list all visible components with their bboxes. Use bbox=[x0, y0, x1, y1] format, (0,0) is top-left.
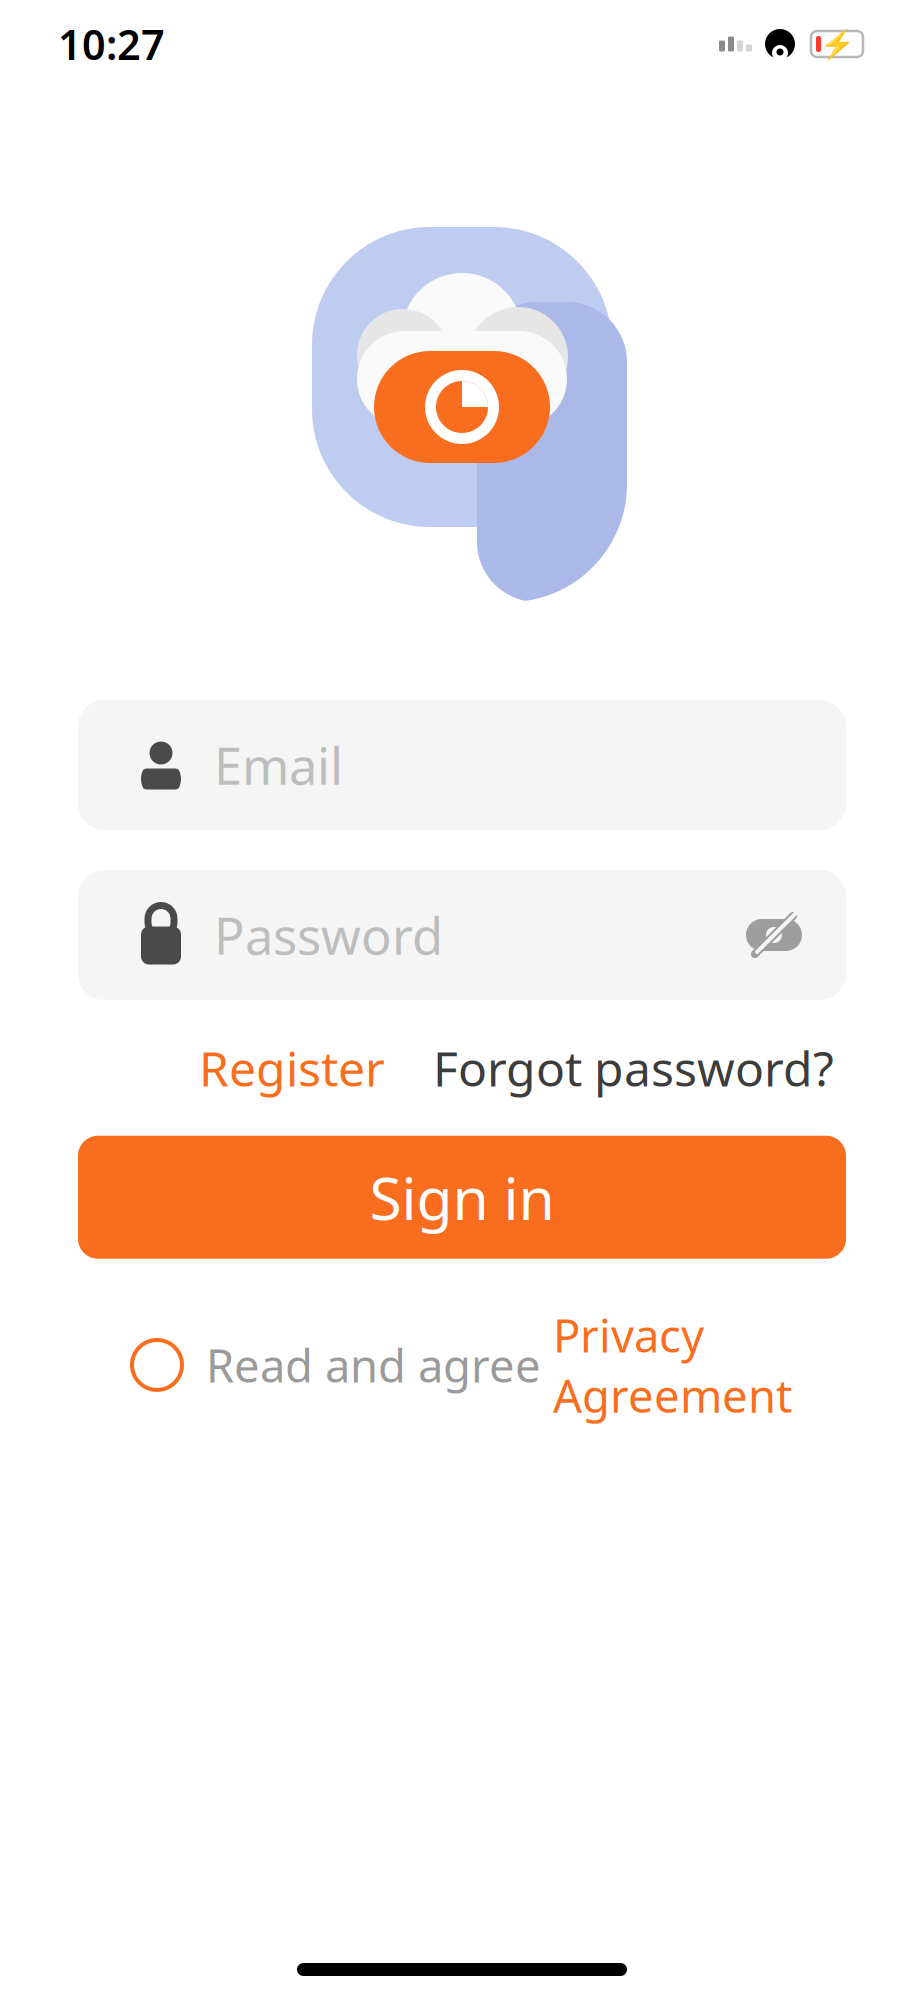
button[interactable]: Sign in bbox=[78, 1136, 846, 1259]
staticText: Register bbox=[199, 1036, 385, 1100]
button[interactable]: Agree to Privacy Agreement bbox=[132, 1340, 182, 1390]
staticText: Forgot password? bbox=[433, 1036, 834, 1100]
button[interactable]: Privacy Agreement bbox=[553, 1305, 792, 1425]
staticText: 10:27 bbox=[58, 17, 165, 71]
staticText: Privacy Agreement bbox=[553, 1305, 792, 1425]
staticText: Password bbox=[214, 901, 443, 969]
button[interactable]: Email bbox=[78, 700, 846, 830]
staticText: Sign in bbox=[369, 1158, 554, 1236]
button[interactable]: Forgot password? bbox=[433, 1036, 834, 1100]
staticText: ⚡ bbox=[819, 28, 854, 60]
staticText: Read and agree bbox=[206, 1335, 553, 1395]
button[interactable]: Register bbox=[199, 1036, 385, 1100]
button[interactable]: Show password bbox=[746, 907, 802, 963]
button[interactable]: Password bbox=[78, 870, 846, 1000]
staticText: Email bbox=[214, 731, 343, 799]
